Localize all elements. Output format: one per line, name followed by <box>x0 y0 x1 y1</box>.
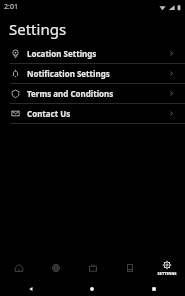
button[interactable]: Media <box>74 263 111 273</box>
button[interactable]: Explore <box>37 263 74 273</box>
button[interactable]: Home <box>0 263 37 273</box>
button[interactable]: Notification Settings <box>0 64 185 83</box>
button[interactable]: Settings <box>148 260 185 276</box>
button[interactable]: Terms and Conditions <box>0 84 185 103</box>
staticText: Contact Us <box>27 108 71 119</box>
staticText: 2:01 <box>4 2 18 12</box>
staticText: Settings <box>9 19 67 39</box>
button[interactable]: Library <box>111 263 148 273</box>
button[interactable]: Location Settings <box>0 44 185 63</box>
staticText: Terms and Conditions <box>27 88 114 99</box>
staticText: SETTINGS <box>157 271 177 276</box>
staticText: Location Settings <box>27 48 97 59</box>
staticText: Notification Settings <box>27 68 110 79</box>
button[interactable]: Contact Us <box>0 104 185 123</box>
